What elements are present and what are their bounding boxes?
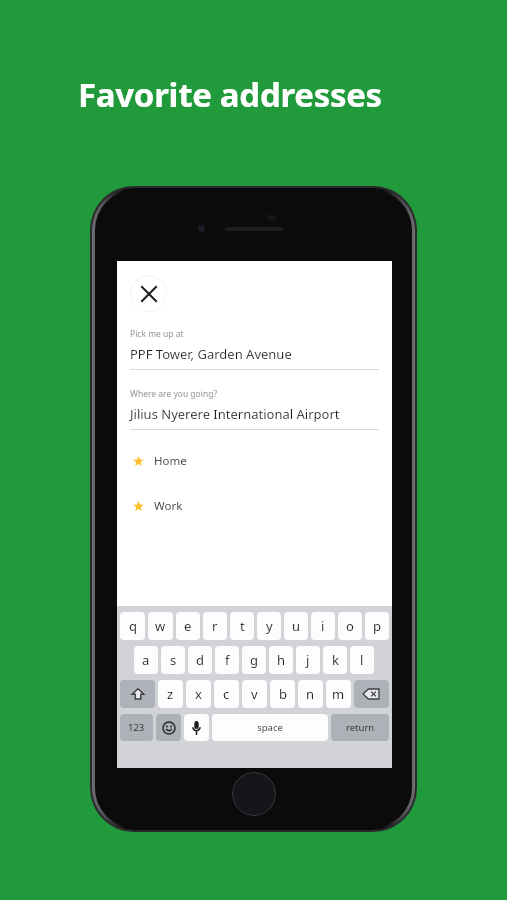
button[interactable]: h xyxy=(269,646,293,674)
staticText: y xyxy=(266,617,273,635)
button[interactable]: d xyxy=(188,646,212,674)
button[interactable]: g xyxy=(242,646,266,674)
staticText: j xyxy=(306,651,310,669)
staticText: return xyxy=(346,721,375,734)
button[interactable]: Where are you going? xyxy=(117,388,392,430)
button[interactable]: Emoji xyxy=(156,714,181,741)
staticText: l xyxy=(360,651,364,669)
staticText: Home xyxy=(154,453,187,469)
staticText: 123 xyxy=(128,721,145,734)
button[interactable]: t xyxy=(230,612,254,640)
staticText: m xyxy=(332,685,345,703)
button[interactable]: return xyxy=(331,714,389,741)
staticText: i xyxy=(321,617,325,635)
staticText: s xyxy=(170,651,177,669)
staticText: b xyxy=(279,685,287,703)
other: Home xyxy=(232,772,276,816)
staticText: d xyxy=(196,651,204,669)
button[interactable]: b xyxy=(270,680,295,708)
button[interactable]: i xyxy=(311,612,335,640)
button[interactable]: m xyxy=(326,680,351,708)
button[interactable]: Shift xyxy=(120,680,155,708)
button[interactable]: p xyxy=(365,612,389,640)
button[interactable]: x xyxy=(186,680,211,708)
staticText: q xyxy=(129,617,137,635)
button[interactable]: r xyxy=(203,612,227,640)
staticText: k xyxy=(332,651,339,669)
button[interactable]: Work xyxy=(117,498,392,514)
staticText: Pick me up at xyxy=(130,328,184,340)
staticText: n xyxy=(306,685,315,703)
button[interactable]: e xyxy=(176,612,200,640)
button[interactable]: f xyxy=(215,646,239,674)
button[interactable]: l xyxy=(350,646,374,674)
button[interactable]: Home xyxy=(117,453,392,469)
button[interactable]: a xyxy=(134,646,158,674)
staticText: r xyxy=(212,617,218,635)
staticText: g xyxy=(250,651,258,669)
staticText: Jilius Nyerere International Airport xyxy=(130,405,340,423)
staticText: space xyxy=(257,721,283,734)
button[interactable]: o xyxy=(338,612,362,640)
button[interactable]: c xyxy=(214,680,239,708)
staticText: p xyxy=(373,617,381,635)
staticText: Where are you going? xyxy=(130,388,218,400)
button[interactable]: u xyxy=(284,612,308,640)
button[interactable]: 123 xyxy=(120,714,153,741)
button[interactable]: z xyxy=(158,680,183,708)
staticText: x xyxy=(195,685,202,703)
button[interactable]: Delete xyxy=(354,680,389,708)
staticText: PPF Tower, Garden Avenue xyxy=(130,345,292,363)
staticText: t xyxy=(240,617,245,635)
staticText: z xyxy=(167,685,174,703)
button[interactable]: v xyxy=(242,680,267,708)
staticText: w xyxy=(155,617,166,635)
staticText: Work xyxy=(154,498,183,514)
staticText: u xyxy=(292,617,301,635)
staticText: c xyxy=(223,685,230,703)
button[interactable]: y xyxy=(257,612,281,640)
button[interactable]: Close xyxy=(130,275,167,312)
button[interactable]: k xyxy=(323,646,347,674)
staticText: f xyxy=(225,651,230,669)
button[interactable]: w xyxy=(148,612,173,640)
staticText: Favorite addresses xyxy=(78,72,382,117)
staticText: e xyxy=(184,617,192,635)
button[interactable]: j xyxy=(296,646,320,674)
button[interactable]: Pick me up at xyxy=(117,328,392,370)
button[interactable]: q xyxy=(120,612,145,640)
staticText: h xyxy=(277,651,286,669)
button[interactable]: n xyxy=(298,680,323,708)
staticText: v xyxy=(251,685,258,703)
button[interactable]: Dictate xyxy=(184,714,209,741)
staticText: a xyxy=(142,651,150,669)
button[interactable]: space xyxy=(212,714,328,741)
staticText: o xyxy=(346,617,354,635)
button[interactable]: s xyxy=(161,646,185,674)
